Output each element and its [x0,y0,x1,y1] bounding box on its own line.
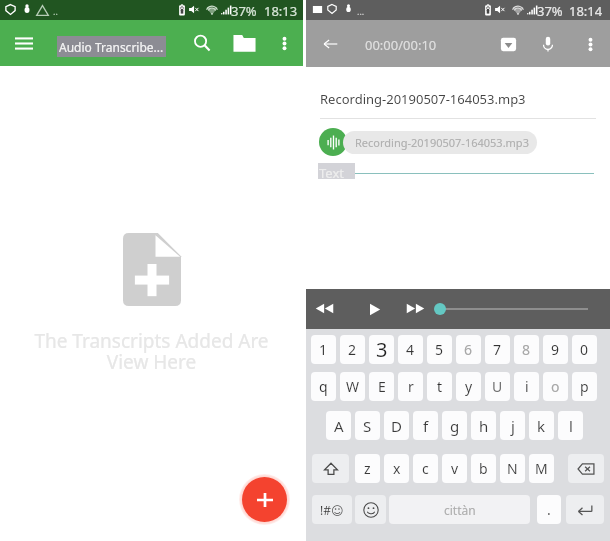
button[interactable]: 5 [427,335,452,364]
button[interactable]: . [537,495,561,524]
staticText: S [363,416,372,436]
button[interactable]: g [442,411,467,440]
button[interactable]: q [311,372,336,401]
staticText: 2 [348,340,357,359]
button[interactable]: Play [361,296,387,322]
button[interactable]: z [355,454,380,483]
button[interactable]: l [558,411,583,440]
staticText: j [511,416,515,436]
staticText: Recording-20190507-164053.mp3 [320,90,526,108]
button[interactable]: A [326,411,351,440]
staticText: !#☺ [320,502,344,518]
staticText: The Transcripts Added Are View Here [34,328,269,375]
staticText: 7 [493,340,502,359]
staticText: c [422,459,429,478]
staticText: g [450,416,460,436]
staticText: 18:14 [569,2,603,20]
staticText: . [547,500,551,519]
staticText: h [479,416,489,436]
button[interactable]: b [471,454,496,483]
button[interactable]: Add [242,477,287,522]
staticText: 8 [522,340,531,359]
button[interactable]: p [572,372,597,401]
staticText: .. [53,5,58,17]
staticText: A [334,416,344,436]
button[interactable]: 7 [485,335,510,364]
button[interactable]: k [529,411,554,440]
staticText: 37% [537,2,563,20]
staticText: z [364,459,371,478]
staticText: N [507,459,518,478]
staticText: 0 [580,340,589,359]
button[interactable]: Forward [402,296,428,322]
staticText: ... [357,5,365,17]
button[interactable]: More options [574,28,606,60]
button[interactable]: Back [314,28,346,60]
staticText: 9 [551,340,560,359]
button[interactable]: f [413,411,438,440]
button[interactable]: Backspace [568,454,604,483]
button[interactable]: 4 [398,335,423,364]
button[interactable]: Enter [566,495,604,524]
staticText: i [525,377,529,396]
staticText: k [537,416,546,436]
button[interactable]: x [384,454,409,483]
button[interactable]: 9 [543,335,568,364]
button[interactable]: Shift [312,454,349,483]
button[interactable]: !#☺ [312,495,352,524]
button[interactable]: h [471,411,496,440]
button[interactable]: More options [268,27,300,59]
staticText: 18:13 [264,2,298,20]
staticText: v [451,459,459,478]
button[interactable]: E [369,372,394,401]
button[interactable]: 1 [311,335,336,364]
button[interactable]: v [442,454,467,483]
staticText: x [393,459,401,478]
staticText: 37% [231,2,257,20]
button[interactable]: M [529,454,554,483]
button[interactable]: 6 [456,335,481,364]
button[interactable]: Seek [434,303,446,315]
button[interactable]: W [340,372,365,401]
staticText: W [346,377,360,396]
staticText: 4 [406,340,415,359]
staticText: q [319,377,328,396]
button[interactable]: j [500,411,525,440]
button[interactable]: Play recording [319,128,347,156]
button[interactable]: cittàn [389,495,530,524]
staticText: t [437,377,443,396]
button[interactable]: D [384,411,409,440]
staticText: U [492,377,503,396]
button[interactable]: o [543,372,568,401]
staticText: D [391,416,402,436]
staticText: E [378,377,386,396]
button[interactable]: Search [186,27,218,59]
staticText: 3 [376,336,388,363]
button[interactable]: Folder [228,27,260,59]
button[interactable]: N [500,454,525,483]
button[interactable]: Audio Transcribe... [57,36,166,57]
button[interactable]: 2 [340,335,365,364]
button[interactable]: Save [492,28,524,60]
button[interactable]: Menu [6,26,41,61]
staticText: 1 [319,340,328,359]
button[interactable]: 3 [369,335,394,364]
staticText: 00:00/00:10 [365,36,437,54]
button[interactable]: 8 [514,335,539,364]
staticText: b [479,459,488,478]
button[interactable]: i [514,372,539,401]
staticText: f [423,416,429,436]
button[interactable]: 0 [572,335,597,364]
button[interactable]: t [427,372,452,401]
button[interactable]: c [413,454,438,483]
button[interactable]: U [485,372,510,401]
button[interactable]: Emoji [355,495,386,524]
staticText: y [465,377,473,396]
button[interactable]: Rewind [311,296,337,322]
button[interactable]: y [456,372,481,401]
staticText: M [535,459,548,478]
staticText: l [569,416,573,436]
button[interactable]: Record [532,28,564,60]
button[interactable]: S [355,411,380,440]
button[interactable]: r [398,372,423,401]
